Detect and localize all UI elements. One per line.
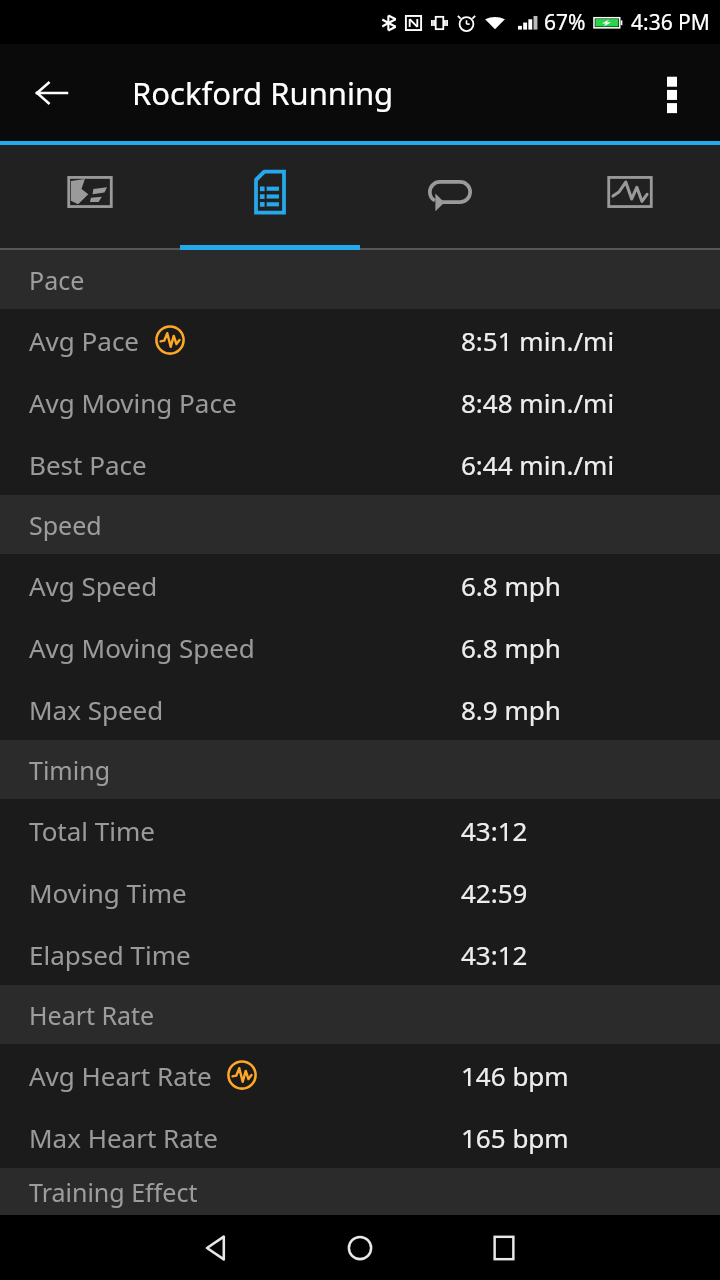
staticText: 6:44 min./mi xyxy=(461,447,615,482)
staticText: 146 bpm xyxy=(461,1058,569,1093)
staticText: Avg Speed xyxy=(29,568,158,603)
staticText: Elapsed Time xyxy=(29,937,191,972)
button[interactable]: Avg Moving Speed xyxy=(0,616,720,678)
staticText: 6.8 mph xyxy=(461,630,561,665)
button[interactable]: Max Heart Rate xyxy=(0,1106,720,1168)
staticText: 165 bpm xyxy=(461,1120,569,1155)
staticText: Avg Moving Pace xyxy=(29,385,237,420)
staticText: Rockford Running xyxy=(132,72,394,114)
button[interactable]: Home xyxy=(288,1215,432,1280)
staticText: Heart Rate xyxy=(29,998,155,1032)
button[interactable]: Avg Pace xyxy=(0,309,720,371)
button[interactable]: Laps xyxy=(360,145,540,250)
staticText: Avg Pace xyxy=(29,323,140,358)
staticText: Training Effect xyxy=(29,1175,198,1209)
button[interactable]: Map xyxy=(0,145,180,250)
button[interactable]: Details xyxy=(180,145,360,250)
staticText: 6.8 mph xyxy=(461,568,561,603)
staticText: Moving Time xyxy=(29,875,187,910)
staticText: Avg Heart Rate xyxy=(29,1058,212,1093)
button[interactable]: Moving Time xyxy=(0,861,720,923)
staticText: 43:12 xyxy=(461,813,528,848)
button[interactable]: Avg Heart Rate xyxy=(0,1044,720,1106)
button[interactable]: Best Pace xyxy=(0,433,720,495)
staticText: 4:36 PM xyxy=(631,8,710,37)
button[interactable]: Avg Moving Pace xyxy=(0,371,720,433)
button[interactable]: Total Time xyxy=(0,799,720,861)
staticText: Pace xyxy=(29,263,85,297)
button[interactable]: Back xyxy=(20,61,84,125)
staticText: Max Heart Rate xyxy=(29,1120,218,1155)
button[interactable]: Graphs xyxy=(540,145,720,250)
staticText: 43:12 xyxy=(461,937,528,972)
button[interactable]: Recent apps xyxy=(432,1215,576,1280)
staticText: Timing xyxy=(29,753,111,787)
staticText: Total Time xyxy=(29,813,155,848)
staticText: Max Speed xyxy=(29,692,164,727)
button[interactable]: Avg Speed xyxy=(0,554,720,616)
staticText: 8:51 min./mi xyxy=(461,323,615,358)
staticText: Avg Moving Speed xyxy=(29,630,255,665)
button[interactable]: Back xyxy=(144,1215,288,1280)
staticText: Best Pace xyxy=(29,447,147,482)
button[interactable]: More options xyxy=(640,61,704,125)
staticText: 42:59 xyxy=(461,875,528,910)
button[interactable]: Max Speed xyxy=(0,678,720,740)
staticText: 8.9 mph xyxy=(461,692,561,727)
button[interactable]: Elapsed Time xyxy=(0,923,720,985)
staticText: 67% xyxy=(544,8,586,37)
staticText: 8:48 min./mi xyxy=(461,385,615,420)
staticText: Speed xyxy=(29,508,102,542)
